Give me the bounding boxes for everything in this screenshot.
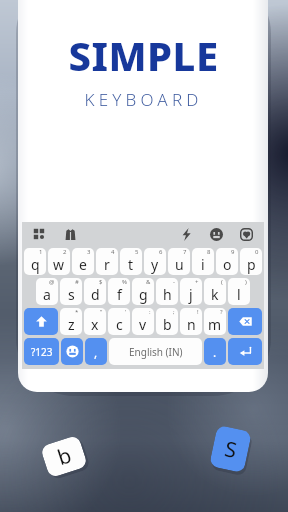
staticText: + [195, 278, 199, 286]
staticText: , [94, 344, 98, 360]
staticText: ( [221, 278, 223, 286]
staticText: 0 [255, 248, 259, 256]
staticText: S [222, 434, 240, 465]
staticText: c [116, 315, 123, 334]
staticText: b [163, 315, 172, 334]
button[interactable]: Apps [31, 226, 48, 243]
staticText: ? [220, 308, 223, 316]
staticText: ! [197, 308, 199, 316]
staticText: u [175, 255, 184, 274]
button[interactable]: 9 [216, 248, 238, 275]
staticText: 6 [159, 248, 163, 256]
button[interactable]: 3 [72, 248, 94, 275]
button[interactable]: 8 [192, 248, 214, 275]
button[interactable]: + [180, 278, 202, 305]
button[interactable]: 2 [48, 248, 70, 275]
staticText: 5 [135, 248, 139, 256]
staticText: . [213, 344, 217, 360]
button[interactable]: English (IN) [109, 338, 202, 365]
staticText: * [75, 308, 79, 316]
button[interactable]: & [132, 278, 154, 305]
button[interactable]: , [85, 338, 107, 365]
button[interactable]: $ [84, 278, 106, 305]
staticText: ) [245, 278, 247, 286]
button[interactable]: @ [36, 278, 58, 305]
button[interactable]: # [60, 278, 82, 305]
button[interactable]: Key b [40, 435, 88, 478]
staticText: 3 [87, 248, 91, 256]
button[interactable]: Themes [62, 226, 79, 243]
staticText: 1 [39, 248, 43, 256]
button[interactable]: Quick actions [178, 226, 195, 243]
button[interactable]: 6 [144, 248, 166, 275]
staticText: b [54, 440, 75, 472]
button[interactable]: % [108, 278, 130, 305]
staticText: q [31, 255, 40, 274]
staticText: @ [49, 278, 55, 286]
button[interactable]: ' [108, 308, 130, 335]
staticText: k [211, 285, 219, 304]
button[interactable]: Emoji [208, 226, 225, 243]
staticText: e [79, 255, 87, 274]
staticText: 7 [183, 248, 187, 256]
button[interactable]: Stickers [238, 226, 255, 243]
staticText: d [91, 285, 100, 304]
staticText: j [189, 285, 193, 304]
button[interactable]: Enter [228, 338, 262, 365]
staticText: 2 [63, 248, 67, 256]
staticText: $ [99, 278, 103, 286]
staticText: - [173, 278, 175, 286]
button[interactable]: 7 [168, 248, 190, 275]
staticText: a [43, 285, 51, 304]
button[interactable]: Shift [24, 308, 58, 335]
button[interactable]: ?123 [24, 338, 59, 365]
staticText: o [223, 255, 232, 274]
staticText: x [91, 315, 99, 334]
staticText: SIMPLE [68, 28, 219, 82]
staticText: ' [125, 308, 127, 316]
staticText: z [68, 315, 75, 334]
button[interactable]: ; [156, 308, 178, 335]
button[interactable]: 5 [120, 248, 142, 275]
staticText: 4 [111, 248, 115, 256]
button[interactable]: 1 [24, 248, 46, 275]
button[interactable]: " [84, 308, 106, 335]
staticText: h [163, 285, 172, 304]
button[interactable]: Backspace [228, 308, 262, 335]
staticText: r [104, 255, 110, 274]
button[interactable]: : [132, 308, 154, 335]
staticText: g [139, 285, 148, 304]
button[interactable]: ) [228, 278, 250, 305]
staticText: y [151, 255, 159, 274]
staticText: f [117, 285, 122, 304]
button[interactable]: * [60, 308, 82, 335]
staticText: s [68, 285, 75, 304]
staticText: m [208, 315, 222, 334]
staticText: w [53, 255, 65, 274]
staticText: l [237, 285, 241, 304]
button[interactable]: 0 [240, 248, 262, 275]
staticText: % [122, 278, 127, 286]
staticText: KEYBOARD [84, 88, 203, 111]
button[interactable]: 4 [96, 248, 118, 275]
staticText: p [247, 255, 256, 274]
button[interactable]: ? [204, 308, 226, 335]
staticText: t [128, 255, 134, 274]
staticText: & [146, 278, 151, 286]
staticText: English (IN) [129, 345, 183, 359]
button[interactable]: . [204, 338, 226, 365]
staticText: " [100, 308, 103, 316]
staticText: 9 [231, 248, 235, 256]
button[interactable]: Emoji [61, 338, 83, 365]
button[interactable]: ( [204, 278, 226, 305]
staticText: n [187, 315, 196, 334]
button[interactable]: Key S [209, 425, 252, 473]
staticText: # [75, 278, 79, 286]
button[interactable]: ! [180, 308, 202, 335]
button[interactable]: - [156, 278, 178, 305]
staticText: ?123 [31, 345, 53, 359]
staticText: ; [173, 308, 175, 316]
staticText: v [139, 315, 147, 334]
staticText: i [201, 255, 205, 274]
staticText: : [149, 308, 151, 316]
